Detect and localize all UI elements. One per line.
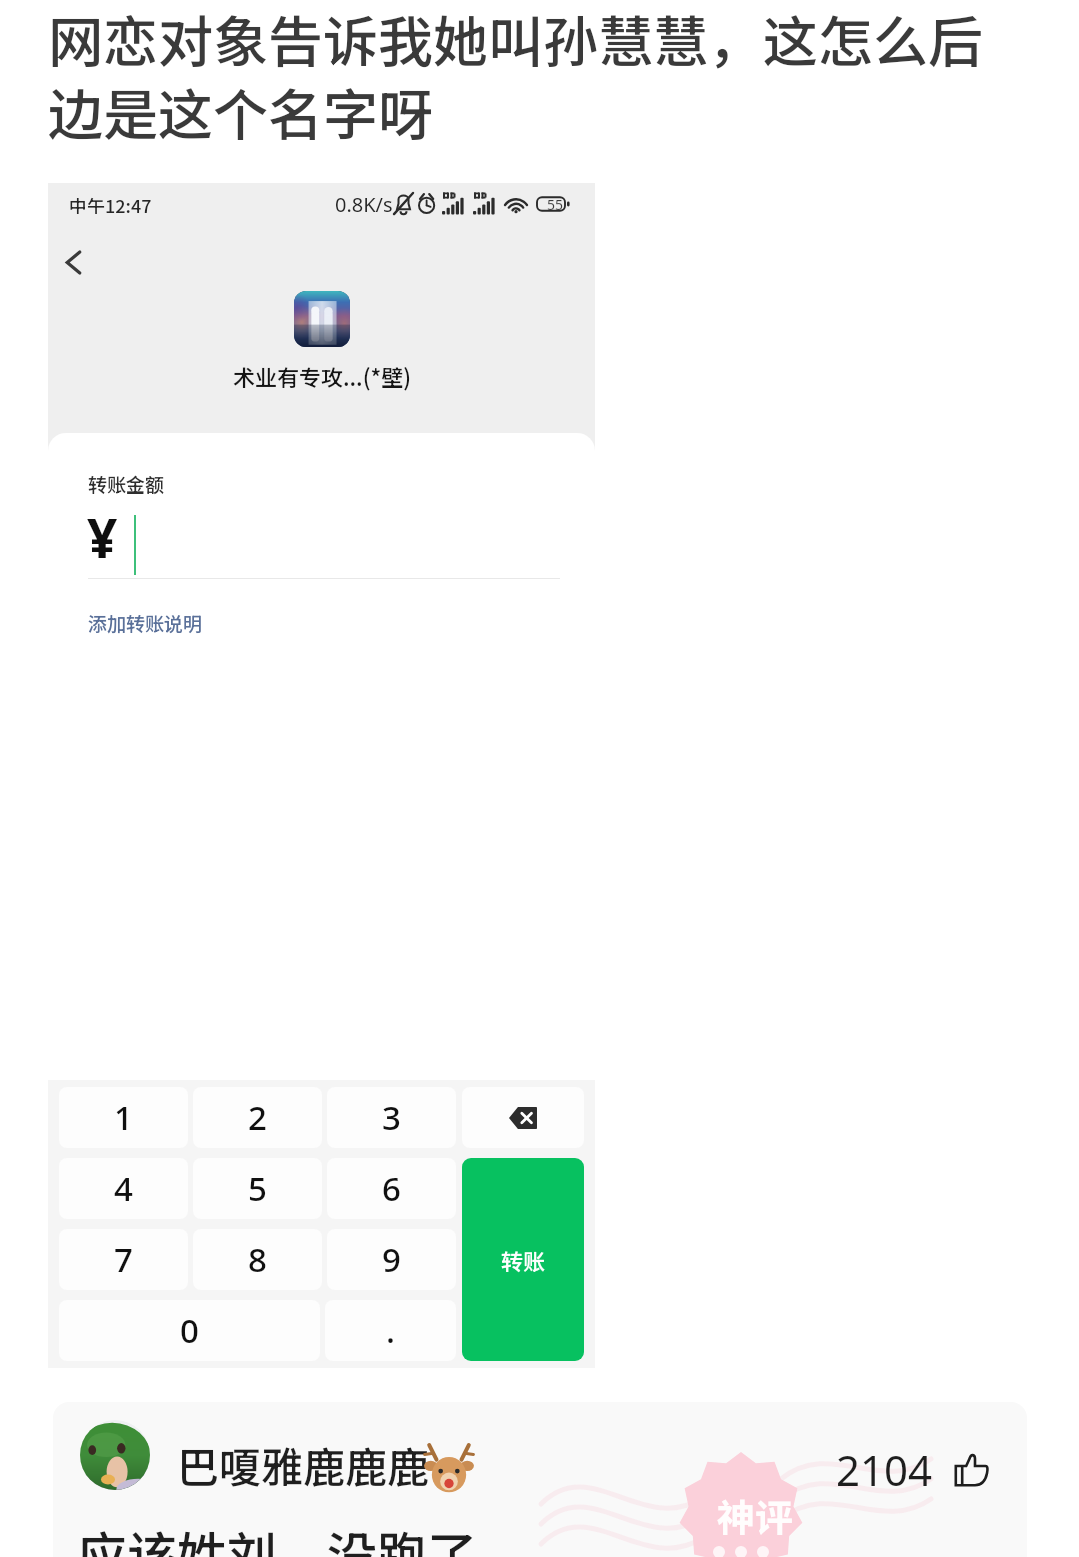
staticText: ¥ <box>87 501 118 573</box>
button[interactable]: 1 <box>59 1087 188 1148</box>
button[interactable]: . <box>325 1300 456 1361</box>
button[interactable]: 9 <box>327 1229 456 1290</box>
staticText: 1 <box>114 1095 133 1140</box>
staticText: 中午12:47 <box>69 192 152 218</box>
staticText: 添加转账说明 <box>88 609 203 637</box>
staticText: 8 <box>248 1237 267 1282</box>
button[interactable]: 5 <box>193 1158 322 1219</box>
button[interactable]: 4 <box>59 1158 188 1219</box>
staticText: 转账 <box>501 1244 546 1276</box>
staticText: 6 <box>382 1166 401 1211</box>
staticText: 转账金额 <box>88 470 165 498</box>
button[interactable]: 7 <box>59 1229 188 1290</box>
staticText: 边是这个名字呀 <box>48 71 434 151</box>
staticText: . <box>386 1308 395 1353</box>
staticText: 5 <box>248 1166 267 1211</box>
button[interactable]: 转账 <box>462 1158 584 1361</box>
button[interactable]: 6 <box>327 1158 456 1219</box>
button[interactable]: 8 <box>193 1229 322 1290</box>
button[interactable]: 3 <box>327 1087 456 1148</box>
staticText: 网恋对象告诉我她叫孙慧慧，这怎么后 <box>48 0 984 78</box>
staticText: 2 <box>248 1095 267 1140</box>
staticText: 55 <box>547 195 564 214</box>
staticText: 9 <box>382 1237 401 1282</box>
staticText: 4 <box>114 1166 133 1211</box>
button[interactable]: Like <box>951 1450 991 1490</box>
staticText: 0 <box>180 1308 199 1353</box>
staticText: 术业有专攻...(*壁) <box>233 360 411 392</box>
staticText: 应该姓刘，没跑了 <box>77 1516 477 1557</box>
staticText: 2104 <box>836 1441 933 1498</box>
button[interactable]: 0 <box>59 1300 320 1361</box>
staticText: 7 <box>114 1237 133 1282</box>
staticText: 0.8K/s <box>335 191 393 218</box>
button[interactable]: Back <box>51 240 95 284</box>
button[interactable]: 添加转账说明 <box>88 609 203 637</box>
staticText: 3 <box>382 1095 401 1140</box>
staticText: 神评 <box>717 1488 794 1543</box>
staticText: 巴嗄雅鹿鹿鹿 <box>177 1434 430 1495</box>
button[interactable]: 2 <box>193 1087 322 1148</box>
button[interactable]: Backspace <box>462 1087 584 1148</box>
